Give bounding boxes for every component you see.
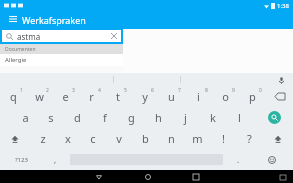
button[interactable]: ? <box>236 128 262 149</box>
staticText: w <box>35 89 44 104</box>
staticText: 9 <box>232 87 235 94</box>
staticText: ? <box>247 131 252 146</box>
button[interactable]: Shift <box>262 128 293 149</box>
staticText: 8 <box>205 87 208 94</box>
staticText: 6 <box>151 87 154 94</box>
button[interactable]: Voice input <box>275 74 287 86</box>
button[interactable]: Emoji <box>251 149 293 170</box>
button[interactable]: m <box>184 128 210 149</box>
staticText: Allergie <box>5 56 27 64</box>
staticText: c <box>90 131 96 146</box>
staticText: n <box>168 131 175 146</box>
button[interactable]: c <box>80 128 106 149</box>
button[interactable]: . <box>225 149 251 170</box>
button[interactable]: ?123 <box>0 149 42 170</box>
button[interactable]: , <box>42 149 68 170</box>
button[interactable]: o <box>212 86 239 107</box>
button[interactable]: Allergie <box>0 54 123 66</box>
staticText: i <box>197 89 200 104</box>
button[interactable]: p <box>239 86 266 107</box>
button[interactable]: u <box>158 86 185 107</box>
button[interactable]: Backspace <box>266 86 293 107</box>
staticText: v <box>116 131 122 146</box>
button[interactable]: b <box>132 128 158 149</box>
button[interactable]: t <box>104 86 131 107</box>
staticText: 3 <box>72 87 75 94</box>
button[interactable]: j <box>172 107 199 128</box>
button[interactable]: f <box>91 107 118 128</box>
staticText: m <box>192 131 203 146</box>
button[interactable]: Search <box>256 107 293 128</box>
staticText: y <box>142 89 148 104</box>
staticText: b <box>142 131 149 146</box>
staticText: o <box>222 89 229 104</box>
button[interactable]: w <box>26 86 52 107</box>
staticText: r <box>89 89 94 104</box>
button[interactable]: Navigation menu <box>6 13 20 27</box>
button[interactable]: s <box>38 107 64 128</box>
staticText: a <box>22 110 29 125</box>
button[interactable]: i <box>185 86 212 107</box>
staticText: 1:38 <box>277 2 289 10</box>
staticText: ?123 <box>15 156 28 164</box>
button[interactable]: Recent apps <box>189 170 202 183</box>
button[interactable]: e <box>52 86 78 107</box>
staticText: d <box>74 110 81 125</box>
button[interactable]: Shift <box>0 128 30 149</box>
staticText: g <box>128 110 135 125</box>
staticText: x <box>65 131 71 146</box>
button[interactable]: Switch keyboard <box>278 172 288 182</box>
button[interactable]: d <box>64 107 91 128</box>
staticText: . <box>237 154 240 165</box>
button[interactable]: k <box>199 107 226 128</box>
staticText: h <box>155 110 162 125</box>
button[interactable]: q <box>0 86 26 107</box>
button[interactable]: a <box>12 107 38 128</box>
staticText: p <box>249 89 256 104</box>
staticText: q <box>10 89 17 104</box>
staticText: 0 <box>259 87 262 94</box>
button[interactable]: g <box>118 107 145 128</box>
button[interactable]: l <box>226 107 253 128</box>
staticText: 5 <box>124 87 127 94</box>
staticText: s <box>48 110 54 125</box>
staticText: 2 <box>46 87 49 94</box>
button[interactable]: y <box>131 86 158 107</box>
staticText: f <box>103 110 107 125</box>
staticText: 7 <box>178 87 181 94</box>
button[interactable]: n <box>158 128 184 149</box>
button[interactable]: r <box>78 86 104 107</box>
button[interactable]: Clear search <box>108 30 120 42</box>
button[interactable]: h <box>145 107 172 128</box>
staticText: 4 <box>98 87 101 94</box>
staticText: Werkafspraken <box>22 14 86 26</box>
staticText: j <box>184 110 187 125</box>
button[interactable]: astma <box>0 28 123 44</box>
staticText: u <box>168 89 175 104</box>
button[interactable]: Home <box>141 170 154 183</box>
staticText: 1 <box>20 87 23 94</box>
staticText: k <box>210 110 216 125</box>
staticText: z <box>40 131 46 146</box>
button[interactable]: Back <box>92 170 105 183</box>
button[interactable]: z <box>30 128 55 149</box>
staticText: astma <box>17 31 41 42</box>
staticText: e <box>62 89 69 104</box>
staticText: l <box>238 110 241 125</box>
staticText: Documenten <box>5 46 36 53</box>
button[interactable]: ! <box>210 128 236 149</box>
staticText: ! <box>222 131 225 146</box>
staticText: t <box>116 89 120 104</box>
staticText: , <box>54 154 57 165</box>
button[interactable]: x <box>55 128 80 149</box>
button[interactable]: v <box>106 128 132 149</box>
